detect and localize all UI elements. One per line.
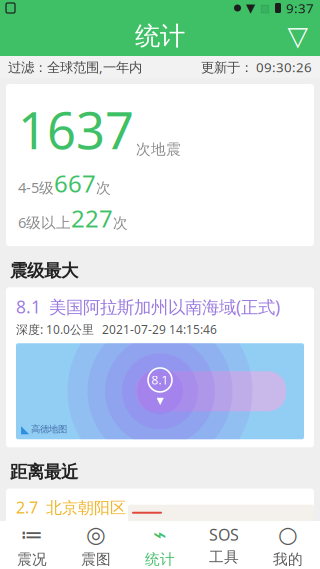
staticText: 深度: 10.0公里 (16, 321, 94, 337)
staticText: 震况 (17, 550, 47, 568)
staticText: ▾ (156, 392, 163, 408)
staticText: 我的 (273, 550, 303, 568)
staticText: ▽ (287, 21, 308, 51)
staticText: 2.7 北京朝阳区 (16, 497, 126, 518)
staticText: (正式) (16, 518, 58, 539)
staticText: 呼和浩特 (142, 537, 178, 548)
staticText: 2021-07-29 14:15:46 (102, 321, 217, 337)
staticText: 2.7 (217, 529, 234, 545)
staticText: 深度: 21.0公里 (16, 541, 94, 557)
button[interactable]: 筛选 (276, 16, 320, 56)
staticText: ▼ (246, 1, 255, 15)
staticText: 次 (113, 214, 128, 232)
button[interactable]: ⌁ (128, 521, 192, 569)
staticText: 6级以上 (18, 213, 71, 232)
staticText: 4-5级 (18, 178, 54, 197)
staticText: ▨ (260, 2, 270, 14)
staticText: 高德地图 (31, 423, 67, 435)
staticText: 8.1 (151, 372, 168, 388)
staticText: 更新于： 09:30:26 (201, 58, 312, 76)
staticText: 过滤：全球范围,一年内 (8, 58, 142, 76)
staticText: 统计 (145, 550, 175, 568)
staticText: 次 (96, 179, 111, 197)
button[interactable]: ≔ (0, 521, 64, 569)
staticText: 距离最近 (10, 461, 78, 483)
staticText: 黄河 (150, 554, 168, 566)
staticText: ◎ (86, 522, 106, 547)
button[interactable]: ○ (256, 521, 320, 569)
staticText: 2022-02-03 01:55:26 (16, 557, 80, 569)
button[interactable]: 2.7 北京朝阳区 (0, 489, 320, 569)
staticText: 667 (54, 167, 96, 199)
staticText: 1637 (18, 96, 134, 163)
staticText: 工具 (209, 548, 239, 566)
staticText: ◣ (21, 423, 29, 435)
staticText: 震图 (81, 550, 111, 568)
staticText: 震级最大 (10, 260, 78, 281)
staticText: 统计 (135, 20, 185, 51)
staticText: ≔ (20, 522, 43, 547)
button[interactable]: 8.1 (0, 287, 320, 447)
staticText: 8.1 (16, 295, 41, 318)
staticText: SOS (209, 524, 239, 545)
button[interactable]: SOS (192, 521, 256, 569)
staticText: ○ (278, 522, 298, 547)
staticText: 沈阳 (288, 537, 306, 548)
staticText: ⌁ (153, 522, 167, 547)
staticText: 227 (71, 202, 113, 234)
staticText: 美国阿拉斯加州以南海域(正式) (49, 295, 280, 318)
staticText: ▾ (222, 549, 230, 567)
button[interactable]: ◎ (64, 521, 128, 569)
staticText: 次地震 (136, 140, 181, 158)
staticText: 9:37 (286, 0, 314, 17)
